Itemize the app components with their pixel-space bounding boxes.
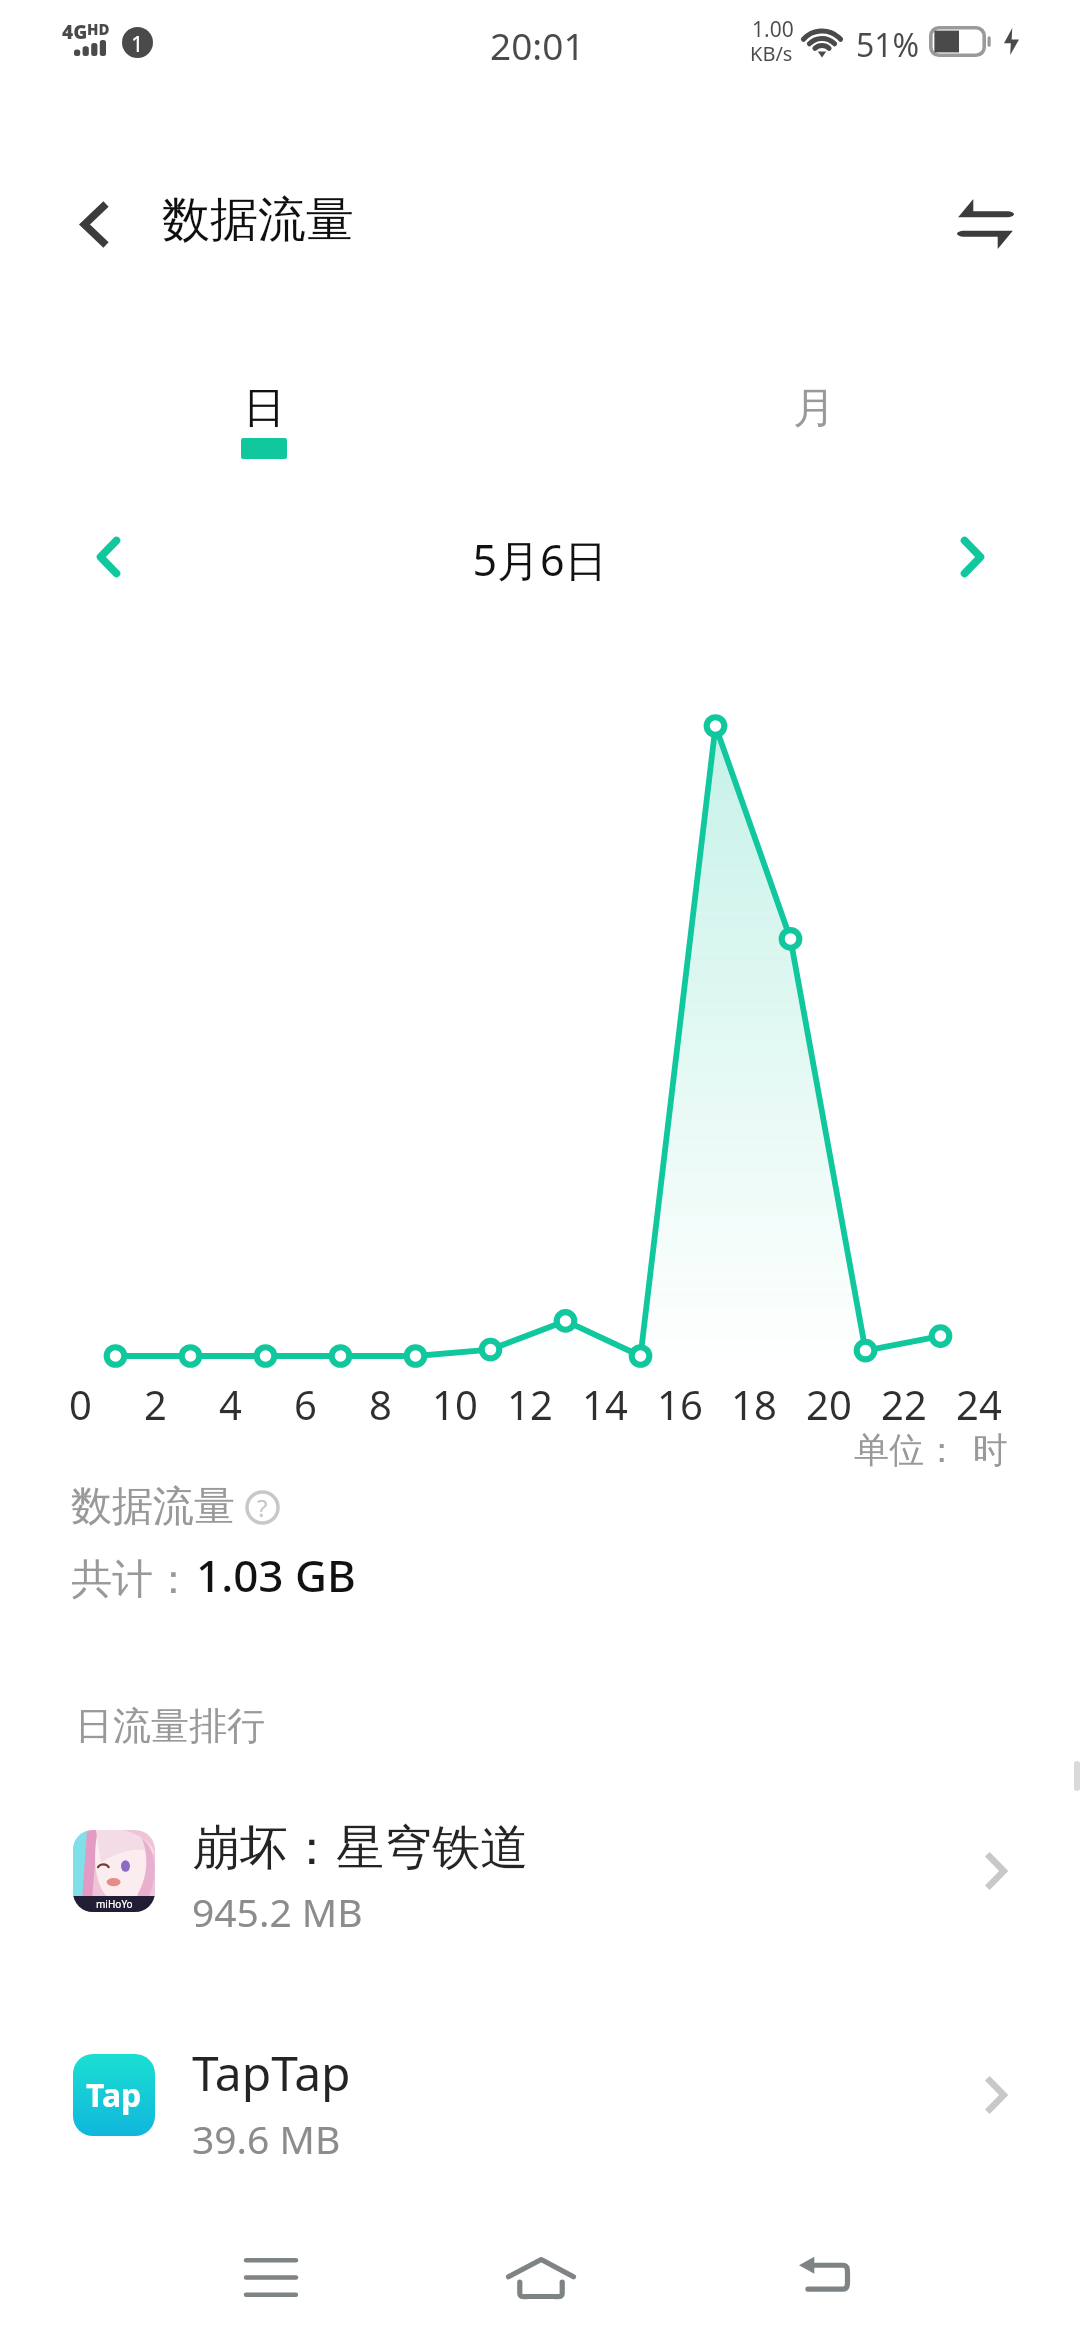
- staticText: TapTap: [192, 2040, 351, 2105]
- staticText: 1.00: [752, 15, 794, 44]
- staticText: 数据流量: [71, 1481, 235, 1533]
- button[interactable]: Back: [739, 2215, 909, 2340]
- staticText: ?: [257, 1491, 268, 1524]
- staticText: 39.6 MB: [192, 2112, 341, 2165]
- staticText: 18: [731, 1377, 777, 1431]
- staticText: 数据流量: [162, 190, 354, 250]
- staticText: 0: [69, 1377, 92, 1431]
- staticText: 22: [881, 1377, 927, 1431]
- staticText: 6: [294, 1377, 317, 1431]
- staticText: 16: [657, 1377, 703, 1431]
- staticText: 10: [432, 1377, 478, 1431]
- staticText: 月: [793, 382, 835, 435]
- staticText: 共计：: [71, 1554, 194, 1606]
- staticText: 4: [219, 1377, 242, 1431]
- staticText: 4G: [62, 19, 88, 45]
- button[interactable]: Home: [456, 2215, 626, 2340]
- staticText: 崩坏：星穹铁道: [192, 1818, 528, 1878]
- staticText: KB/s: [750, 40, 793, 67]
- button[interactable]: Help: [245, 1490, 280, 1525]
- staticText: 14: [582, 1377, 628, 1431]
- staticText: 日: [243, 382, 285, 435]
- staticText: 5月6日: [0, 530, 1080, 589]
- button[interactable]: 月: [710, 360, 920, 490]
- button[interactable]: Switch: [930, 168, 1040, 280]
- staticText: 8: [369, 1377, 392, 1431]
- button[interactable]: miHoYo: [0, 1797, 1080, 1945]
- staticText: 20:01: [490, 20, 585, 70]
- staticText: 12: [507, 1377, 553, 1431]
- button[interactable]: 日: [160, 360, 370, 490]
- staticText: 51%: [856, 23, 920, 67]
- staticText: 24: [956, 1377, 1002, 1431]
- staticText: miHoYo: [96, 1897, 133, 1911]
- staticText: HD: [87, 19, 110, 39]
- staticText: 单位：: [854, 1428, 959, 1472]
- staticText: 2: [144, 1377, 167, 1431]
- staticText: 20: [806, 1377, 852, 1431]
- staticText: Tap: [86, 2073, 142, 2117]
- staticText: 1: [131, 28, 144, 58]
- button[interactable]: Next day: [917, 502, 1027, 612]
- staticText: 1.03 GB: [196, 1545, 356, 1605]
- button[interactable]: Recents: [186, 2215, 356, 2340]
- staticText: 时: [973, 1428, 1008, 1472]
- staticText: 日流量排行: [75, 1702, 265, 1750]
- button[interactable]: Tap: [0, 2021, 1080, 2169]
- button[interactable]: Previous day: [53, 502, 163, 612]
- button[interactable]: Back: [40, 168, 150, 280]
- staticText: 945.2 MB: [192, 1885, 363, 1938]
